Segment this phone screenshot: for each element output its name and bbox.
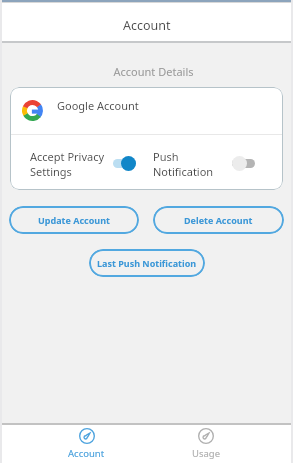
staticText: Update Account (38, 214, 110, 226)
staticText: Account (68, 447, 105, 460)
button[interactable]: Delete Account (153, 206, 284, 234)
staticText: Google Account (57, 98, 139, 113)
staticText: Push Notification (153, 149, 214, 179)
staticText: Delete Account (184, 214, 253, 226)
button[interactable]: Last Push Notification (89, 249, 205, 277)
staticText: Accept Privacy Settings (30, 149, 105, 179)
button[interactable]: Account (27, 425, 146, 463)
button[interactable]: Push Notification (232, 156, 255, 171)
button[interactable]: Accept Privacy Settings (113, 156, 136, 171)
button[interactable]: Update Account (9, 206, 139, 234)
staticText: Account (123, 17, 171, 34)
staticText: Last Push Notification (97, 257, 197, 269)
button[interactable]: Usage (146, 425, 266, 463)
staticText: Usage (192, 447, 221, 460)
staticText: Account Details (7, 64, 293, 79)
